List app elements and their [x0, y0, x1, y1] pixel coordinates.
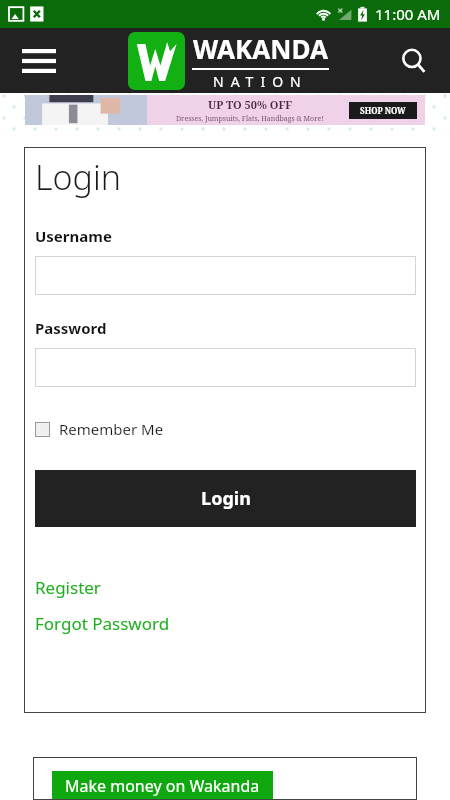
button[interactable]	[35, 348, 416, 387]
button[interactable]: Open navigation menu	[16, 40, 62, 82]
button[interactable]: Forgot Password	[35, 612, 416, 635]
staticText: WAKANDA	[193, 31, 328, 66]
staticText: 11:00 AM	[375, 4, 441, 24]
staticText: UP TO 50% OFF	[208, 97, 293, 112]
button[interactable]: UP TO 50% OFF	[25, 95, 425, 125]
button[interactable]: Make money on Wakanda	[52, 771, 273, 800]
staticText: Forgot Password	[35, 612, 170, 635]
staticText: NATION	[213, 72, 308, 91]
staticText: Remember Me	[59, 419, 164, 439]
button[interactable]: Register	[35, 576, 416, 599]
button[interactable]	[35, 256, 416, 295]
staticText: SHOP NOW	[360, 105, 406, 116]
staticText: Login	[35, 154, 122, 200]
button[interactable]: Search	[392, 39, 436, 83]
staticText: Login	[201, 486, 251, 511]
staticText: Password	[35, 318, 107, 338]
staticText: Register	[35, 576, 101, 599]
button[interactable]: Login	[35, 470, 416, 527]
staticText: Make money on Wakanda	[65, 775, 260, 797]
button[interactable]: Remember Me	[35, 416, 164, 442]
staticText: Username	[35, 226, 112, 246]
staticText: Dresses, Jumpsuits, Flats, Handbags & Mo…	[176, 114, 324, 124]
